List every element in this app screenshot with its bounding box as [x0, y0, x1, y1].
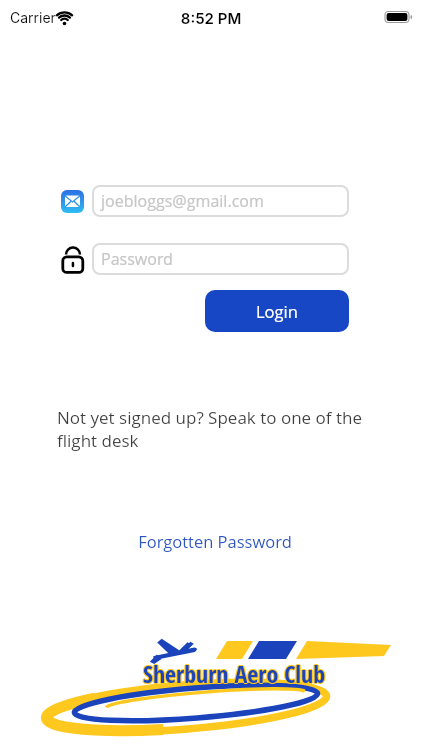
button[interactable]: Login [205, 290, 349, 332]
staticText: Sherburn Aero Club [144, 657, 327, 690]
staticText: Sherburn Aero Club [143, 656, 326, 689]
button[interactable]: Forgotten Password [4, 530, 422, 552]
staticText: 8:52 PM [0, 9, 422, 27]
staticText: Sherburn Aero Club [143, 657, 326, 690]
staticText: Password [101, 248, 173, 270]
button[interactable]: joebloggs@gmail.com [92, 185, 349, 217]
staticText: Login [256, 300, 298, 322]
staticText: Not yet signed up? Speak to one of the f… [57, 406, 362, 452]
staticText: Forgotten Password [4, 530, 422, 552]
staticText: Sherburn Aero Club [143, 658, 326, 691]
button[interactable]: Password [92, 243, 349, 275]
staticText: joebloggs@gmail.com [101, 190, 264, 212]
staticText: Sherburn Aero Club [142, 657, 325, 690]
staticText: Carrier [10, 9, 56, 26]
